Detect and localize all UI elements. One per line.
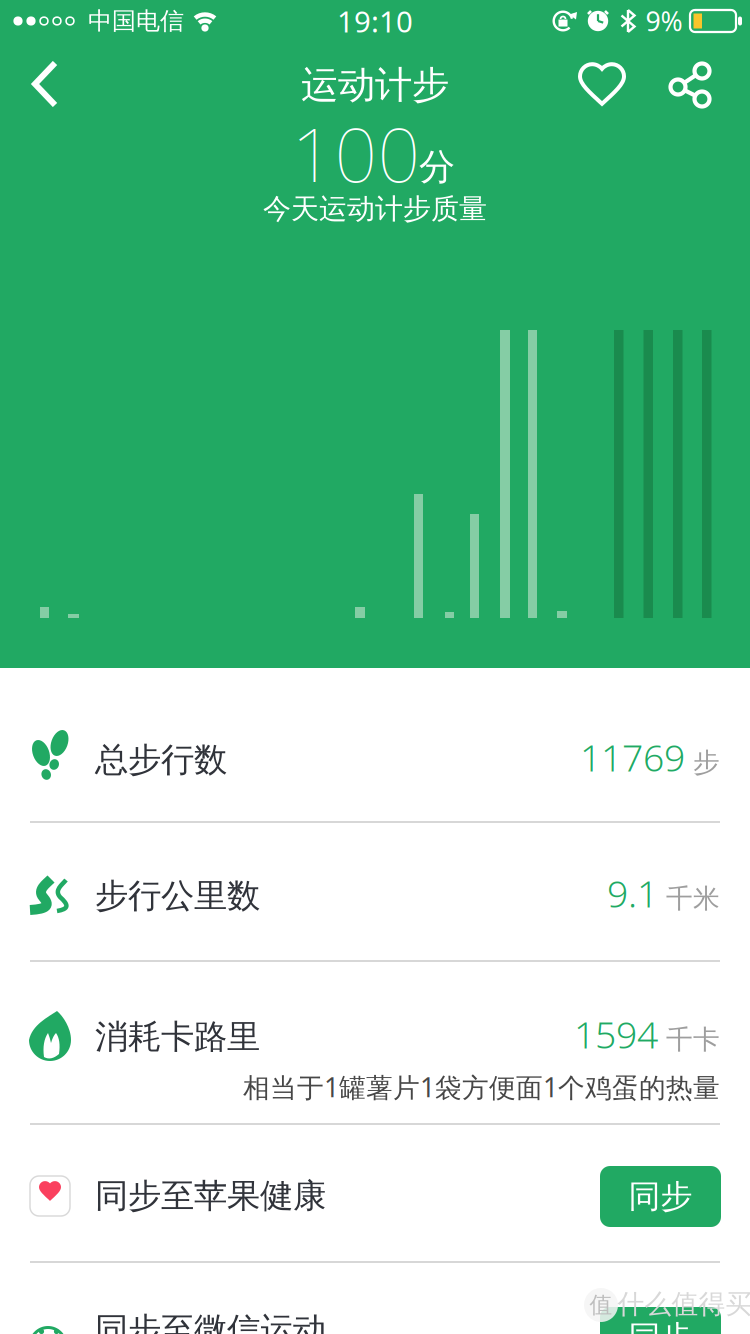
staticText: 步行公里数 — [95, 875, 260, 916]
button[interactable]: 同步 — [600, 1307, 721, 1334]
staticText: 分 — [419, 145, 455, 189]
staticText: 相当于1罐薯片1袋方便面1个鸡蛋的热量 — [243, 1069, 720, 1105]
staticText: 千卡 — [666, 1023, 720, 1056]
button[interactable]: 同步 — [600, 1166, 721, 1227]
staticText: 总步行数 — [95, 739, 227, 780]
staticText: 消耗卡路里 — [95, 1016, 260, 1057]
staticText: 什么值得买 — [617, 1288, 750, 1320]
staticText: 9.1 — [607, 868, 658, 918]
staticText: 同步 — [628, 1177, 692, 1216]
staticText: 中国电信 — [88, 6, 184, 36]
staticText: 9% — [645, 3, 682, 39]
staticText: 19:10 — [337, 1, 413, 40]
staticText: 1594 — [574, 1009, 658, 1059]
staticText: 值 — [589, 1291, 612, 1319]
staticText: 同步至微信运动 — [95, 1309, 326, 1334]
staticText: 步 — [693, 746, 720, 779]
staticText: 今天运动计步质量 — [263, 192, 487, 226]
button[interactable] — [657, 50, 727, 120]
button[interactable] — [567, 49, 637, 119]
staticText: 同步至苹果健康 — [95, 1175, 326, 1216]
staticText: 运动计步 — [301, 62, 449, 108]
staticText: 千米 — [666, 882, 720, 915]
staticText: 11769 — [580, 732, 685, 782]
button[interactable] — [10, 49, 80, 119]
staticText: 同步 — [628, 1318, 692, 1334]
staticText: 100 — [291, 103, 420, 203]
